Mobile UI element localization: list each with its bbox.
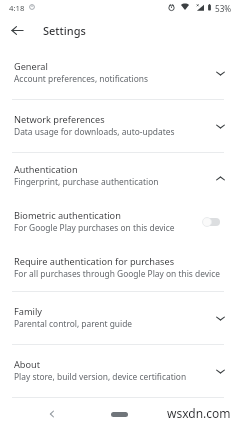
staticText: 53%	[215, 3, 232, 14]
button[interactable]: Require authentication for purchases	[0, 245, 240, 291]
staticText: Settings	[43, 23, 86, 38]
staticText: Data usage for downloads, auto-updates	[14, 126, 175, 137]
staticText: Family	[14, 305, 42, 318]
staticText: Play store, build version, device certif…	[14, 371, 187, 382]
staticText: Biometric authentication	[14, 209, 121, 222]
staticText: For all purchases through Google Play on…	[14, 268, 220, 279]
staticText: Network preferences	[14, 113, 105, 126]
button[interactable]: About	[0, 345, 240, 397]
button[interactable]: Authentication	[0, 153, 240, 199]
staticText: Require authentication for purchases	[14, 255, 175, 268]
staticText: For Google Play purchases on this device	[14, 222, 175, 233]
button[interactable]: Back	[2, 14, 33, 47]
staticText: 4:18	[9, 3, 25, 14]
staticText: Authentication	[14, 163, 78, 176]
staticText: Fingerprint, purchase authentication	[14, 176, 159, 187]
button[interactable]: Biometric authentication toggle	[202, 213, 229, 231]
button[interactable]: Back	[44, 406, 59, 421]
staticText: General	[14, 60, 48, 73]
staticText: Account preferences, notifications	[14, 73, 149, 84]
button[interactable]: Biometric authentication	[0, 199, 240, 245]
staticText: wsxdn.com	[167, 405, 231, 421]
button[interactable]: Family	[0, 292, 240, 344]
staticText: Parental control, parent guide	[14, 318, 133, 329]
button[interactable]: Network preferences	[0, 100, 240, 152]
staticText: About	[14, 358, 41, 371]
button[interactable]: General	[0, 47, 240, 99]
